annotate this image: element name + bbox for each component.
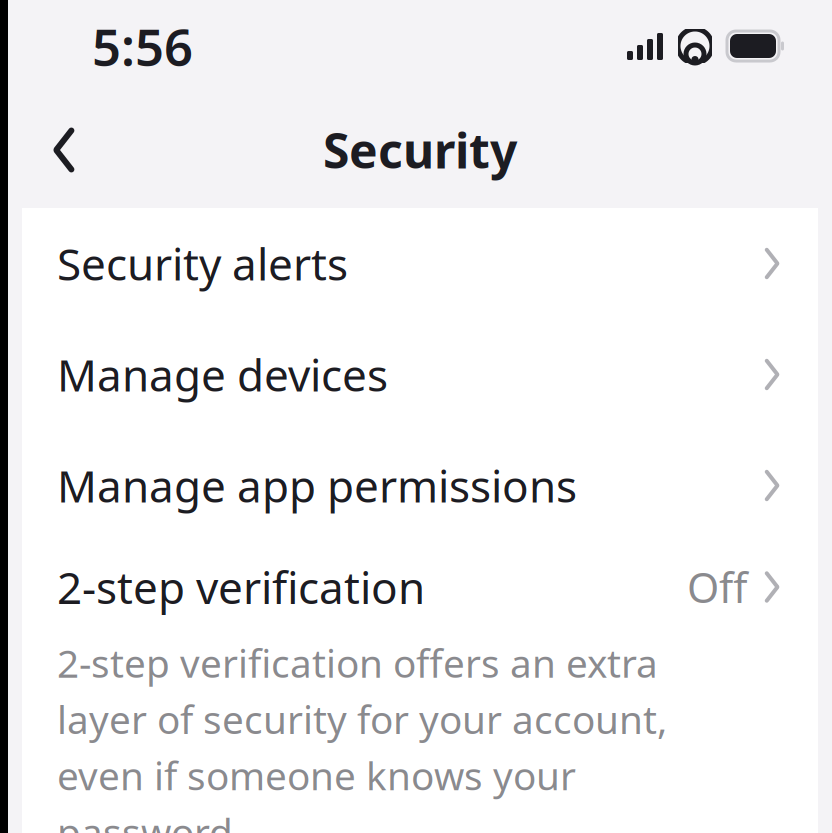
button[interactable]: 2-step verification <box>22 541 818 833</box>
staticText: Security alerts <box>57 234 348 293</box>
staticText: Manage devices <box>57 345 388 404</box>
button[interactable]: Manage app permissions <box>22 430 818 541</box>
button[interactable]: Manage devices <box>22 319 818 430</box>
staticText: Manage app permissions <box>57 456 577 515</box>
staticText: Security <box>323 118 517 182</box>
button[interactable]: Back <box>26 112 102 188</box>
staticText: Off <box>687 560 747 614</box>
staticText: 5:56 <box>92 12 193 80</box>
button[interactable]: Security alerts <box>22 208 818 319</box>
staticText: 2-step verification offers an extra laye… <box>57 637 667 833</box>
staticText: 2-step verification <box>57 558 425 616</box>
